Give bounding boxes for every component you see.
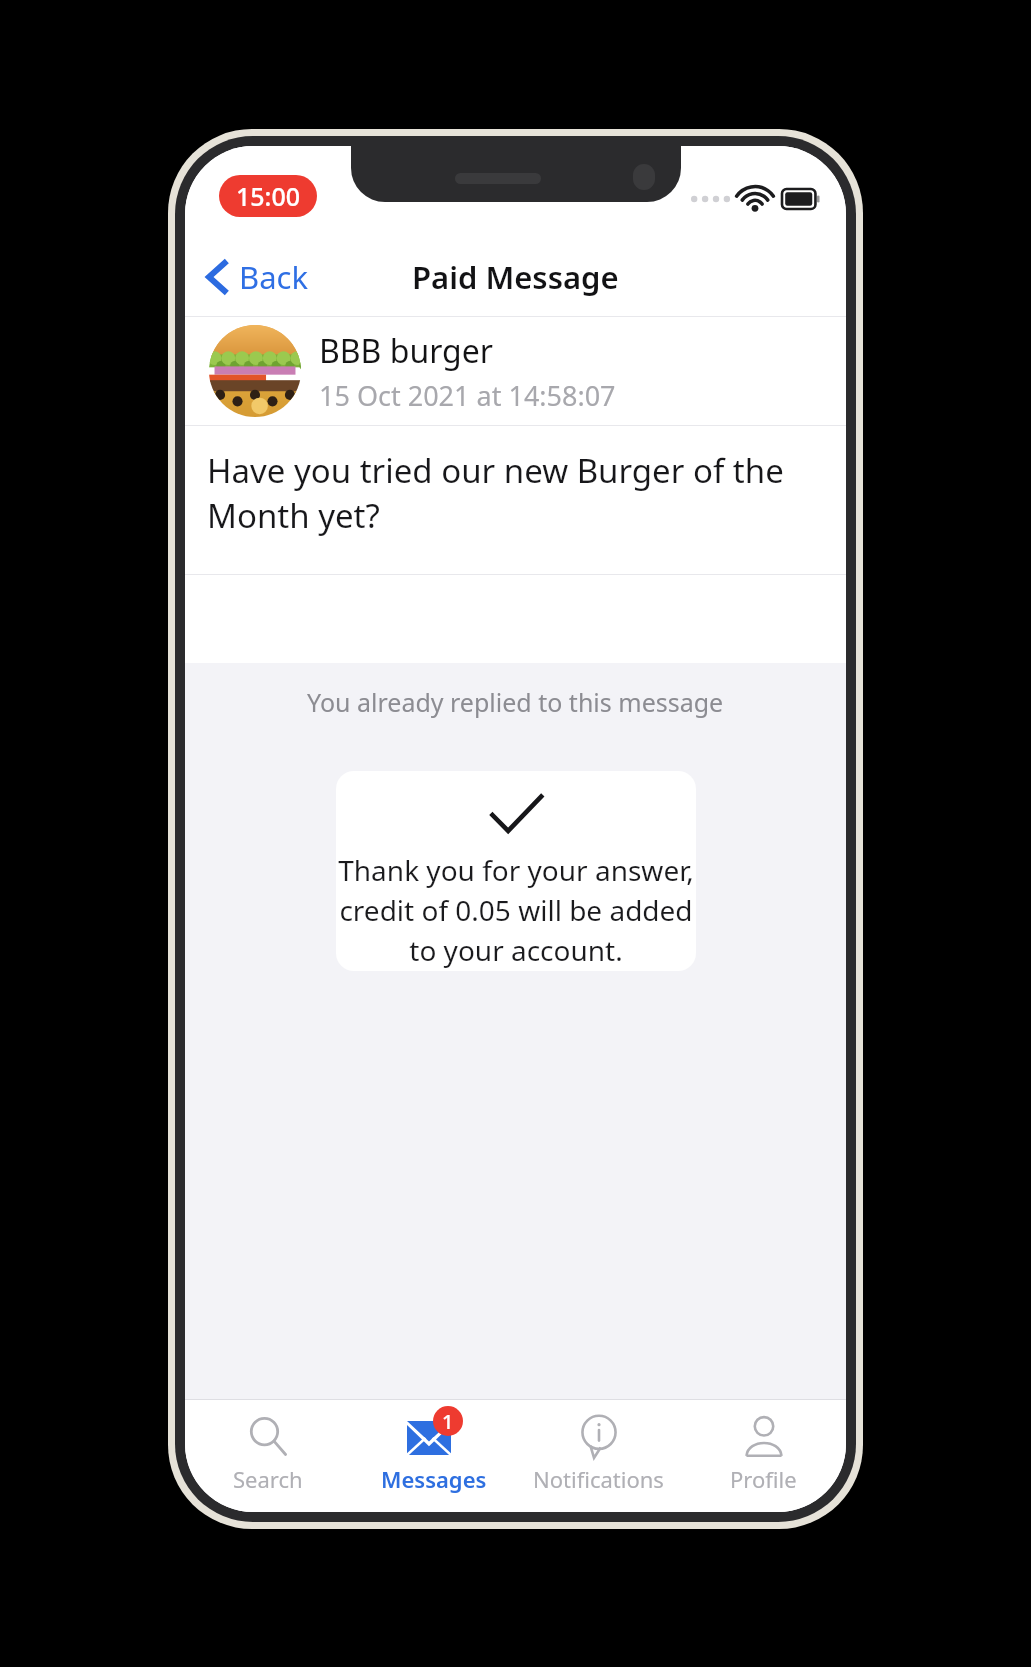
button[interactable]: BBB burger <box>185 317 846 425</box>
staticText: Profile <box>730 1464 797 1494</box>
staticText: Notifications <box>533 1464 664 1494</box>
staticText: Thank you for your answer, credit of 0.0… <box>336 851 696 970</box>
staticText: Back <box>239 256 308 298</box>
button[interactable]: Notifications <box>516 1400 681 1512</box>
staticText: Paid Message <box>412 256 619 298</box>
staticText: 1 <box>442 1408 454 1435</box>
button[interactable]: Back <box>197 248 318 306</box>
staticText: Messages <box>381 1464 487 1494</box>
button[interactable]: Profile <box>681 1400 846 1512</box>
button[interactable]: Search <box>185 1400 351 1512</box>
staticText: You already replied to this message <box>307 685 724 719</box>
staticText: Search <box>233 1464 303 1494</box>
button[interactable]: 1 <box>351 1400 516 1512</box>
staticText: BBB burger <box>319 329 494 373</box>
staticText: 15:00 <box>236 179 301 213</box>
staticText: Have you tried our new Burger of the Mon… <box>207 448 824 537</box>
staticText: 15 Oct 2021 at 14:58:07 <box>319 377 616 414</box>
